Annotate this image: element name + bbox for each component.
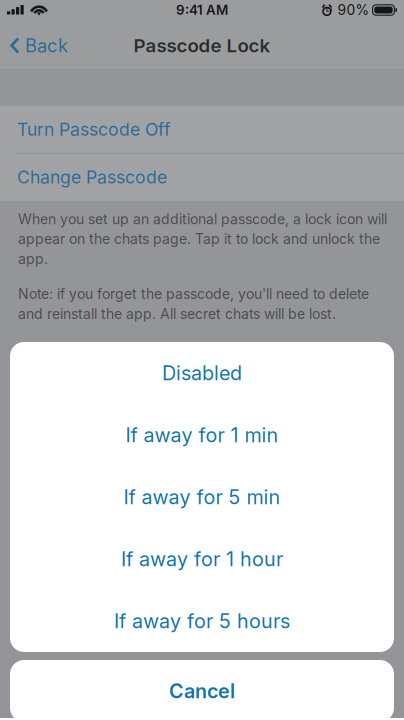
staticText: Change Passcode [17, 166, 167, 188]
staticText: Note: if you forget the passcode, you'll… [18, 285, 369, 302]
staticText: If away for 1 hour [121, 547, 283, 571]
staticText: When you set up an additional passcode, … [18, 211, 387, 227]
button[interactable]: Cancel [10, 660, 394, 720]
button[interactable]: If away for 5 min [10, 466, 394, 528]
staticText: If away for 5 hours [114, 609, 290, 633]
staticText: 90% [338, 2, 370, 18]
staticText: appear on the chats page. Tap it to lock… [18, 230, 380, 247]
staticText: Passcode Lock [133, 34, 270, 57]
button[interactable]: Turn Passcode Off [0, 106, 404, 153]
staticText: app. [18, 250, 48, 267]
button[interactable]: Disabled [10, 342, 394, 404]
staticText: If away for 5 min [123, 485, 280, 509]
staticText: and reinstall the app. All secret chats … [18, 305, 336, 322]
button[interactable]: Back [0, 22, 76, 69]
staticText: If away for 1 min [125, 423, 278, 447]
staticText: 9:41 AM [176, 2, 228, 18]
button[interactable]: Change Passcode [0, 154, 404, 201]
staticText: Back [25, 34, 68, 57]
staticText: Turn Passcode Off [17, 119, 171, 140]
staticText: Disabled [162, 361, 242, 385]
staticText: Cancel [169, 679, 235, 703]
button[interactable]: If away for 1 hour [10, 528, 394, 590]
button[interactable]: If away for 5 hours [10, 590, 394, 652]
button[interactable]: If away for 1 min [10, 404, 394, 466]
